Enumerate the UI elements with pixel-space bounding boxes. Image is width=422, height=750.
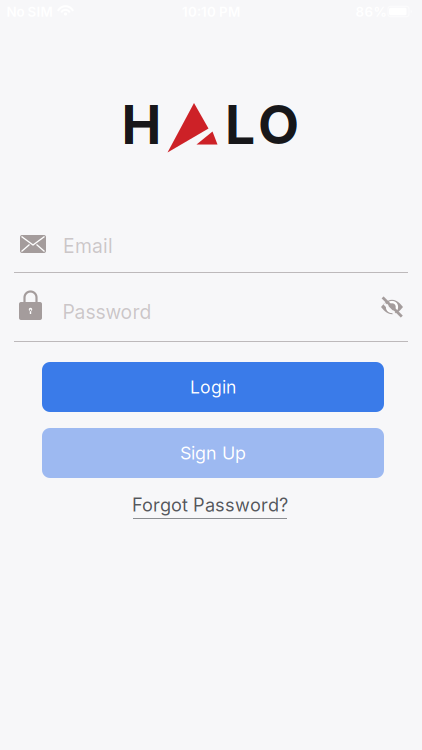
button[interactable]: Forgot Password?: [132, 494, 288, 516]
staticText: O: [258, 92, 299, 157]
staticText: Login: [190, 376, 236, 398]
staticText: L: [225, 92, 255, 157]
staticText: Forgot Password?: [132, 494, 288, 516]
staticText: Password: [62, 300, 151, 324]
button[interactable]: Sign Up: [42, 428, 384, 478]
button[interactable]: Show password: [370, 285, 414, 329]
staticText: H: [121, 92, 161, 157]
staticText: Email: [63, 234, 113, 258]
staticText: Sign Up: [180, 442, 246, 464]
button[interactable]: Login: [42, 362, 384, 412]
